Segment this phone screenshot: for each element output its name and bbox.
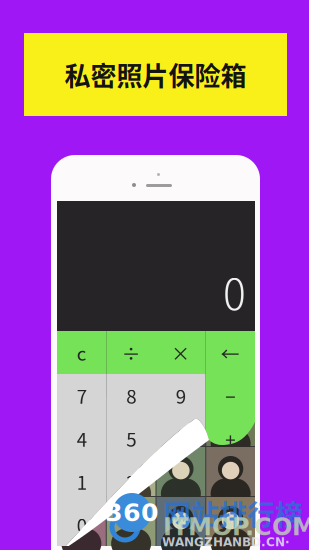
button[interactable]: × (156, 331, 205, 374)
staticText: − (225, 382, 235, 409)
button[interactable]: 9 (156, 374, 205, 417)
button[interactable]: c (57, 331, 106, 374)
staticText: 9 (176, 382, 186, 409)
button[interactable] (156, 503, 205, 546)
button[interactable]: . (106, 503, 156, 546)
button[interactable]: 2 (106, 460, 156, 503)
button[interactable]: ← (205, 331, 255, 374)
staticText: c (77, 339, 87, 366)
button[interactable]: 4 (57, 417, 106, 460)
staticText: ÷ (122, 339, 141, 366)
button[interactable]: ÷ (106, 331, 156, 374)
staticText: . (129, 511, 134, 538)
staticText: × (171, 339, 190, 366)
button[interactable] (205, 460, 255, 503)
staticText: 4 (77, 425, 87, 452)
button[interactable]: 6 (156, 417, 205, 460)
staticText: 2 (126, 468, 136, 495)
button[interactable] (205, 503, 255, 546)
staticText: 网站排行榜 (163, 493, 303, 533)
staticText: WANGZHANBD.CN· (162, 535, 290, 549)
staticText: ← (221, 339, 240, 366)
staticText: 8 (126, 382, 136, 409)
button[interactable]: 8 (106, 374, 156, 417)
staticText: 0 (223, 260, 246, 322)
staticText: 1 (77, 468, 87, 495)
staticText: 私密照片保险箱 (64, 56, 246, 93)
button[interactable]: − (205, 374, 255, 417)
button[interactable]: 0 (57, 503, 106, 546)
staticText: ITMOP.COM (163, 513, 309, 541)
staticText: 6 (176, 425, 186, 452)
button[interactable]: 3 (156, 460, 205, 503)
staticText: 7 (77, 382, 87, 409)
staticText: 5 (126, 425, 136, 452)
button[interactable]: 1 (57, 460, 106, 503)
staticText: 0 (77, 511, 87, 538)
button[interactable]: 7 (57, 374, 106, 417)
button[interactable]: + (205, 417, 255, 460)
staticText: + (225, 425, 235, 452)
button[interactable]: 5 (106, 417, 156, 460)
staticText: 360 (105, 498, 159, 527)
staticText: 3 (176, 468, 186, 495)
